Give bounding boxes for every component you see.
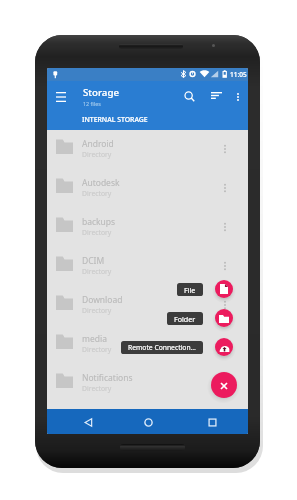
button[interactable]: Open navigation drawer <box>50 86 71 107</box>
button[interactable]: Search <box>179 86 200 107</box>
staticText: Download <box>82 294 123 306</box>
button[interactable]: media <box>47 324 248 363</box>
staticText: Android <box>82 138 114 150</box>
button[interactable]: Item options <box>217 180 233 196</box>
button[interactable]: Sort <box>206 86 227 107</box>
button[interactable]: File <box>177 283 203 296</box>
button[interactable]: Folder <box>167 312 203 325</box>
button[interactable]: Remote Connection… <box>215 338 233 356</box>
button[interactable]: Item options <box>217 375 233 391</box>
button[interactable]: backups <box>47 207 248 246</box>
button[interactable]: Back <box>80 414 96 430</box>
staticText: Directory <box>82 189 112 198</box>
button[interactable]: Recent apps <box>204 414 220 430</box>
staticText: Directory <box>82 345 112 354</box>
staticText: Autodesk <box>82 177 120 189</box>
button[interactable]: Android <box>47 129 248 168</box>
button[interactable]: Folder <box>215 309 233 327</box>
staticText: Directory <box>82 267 112 276</box>
staticText: Directory <box>82 150 112 159</box>
button[interactable]: File <box>215 280 233 298</box>
staticText: Directory <box>82 228 112 237</box>
button[interactable]: Download <box>47 285 248 324</box>
staticText: Storage <box>83 86 119 99</box>
staticText: Folder <box>174 314 196 324</box>
staticText: File <box>184 285 196 295</box>
button[interactable]: Close menu <box>211 372 237 398</box>
button[interactable]: DCIM <box>47 246 248 285</box>
button[interactable]: Item options <box>217 258 233 274</box>
button[interactable]: Notifications <box>47 363 248 402</box>
staticText: 12 files <box>83 100 101 107</box>
button[interactable]: Remote Connection… <box>121 341 203 354</box>
staticText: DCIM <box>82 255 105 267</box>
button[interactable]: Autodesk <box>47 168 248 207</box>
button[interactable]: Item options <box>217 219 233 235</box>
staticText: Directory <box>82 384 112 393</box>
button[interactable]: Item options <box>217 297 233 313</box>
staticText: media <box>82 333 107 345</box>
staticText: INTERNAL STORAGE <box>82 115 148 124</box>
staticText: Directory <box>82 306 112 315</box>
staticText: backups <box>82 216 116 228</box>
staticText: Notifications <box>82 372 133 384</box>
staticText: Remote Connection… <box>128 343 196 352</box>
staticText: 11:05 <box>230 70 247 79</box>
button[interactable]: More options <box>228 87 248 107</box>
button[interactable]: Item options <box>217 336 233 352</box>
button[interactable]: Item options <box>217 141 233 157</box>
button[interactable]: Home <box>140 414 156 430</box>
button[interactable]: INTERNAL STORAGE <box>47 112 248 130</box>
